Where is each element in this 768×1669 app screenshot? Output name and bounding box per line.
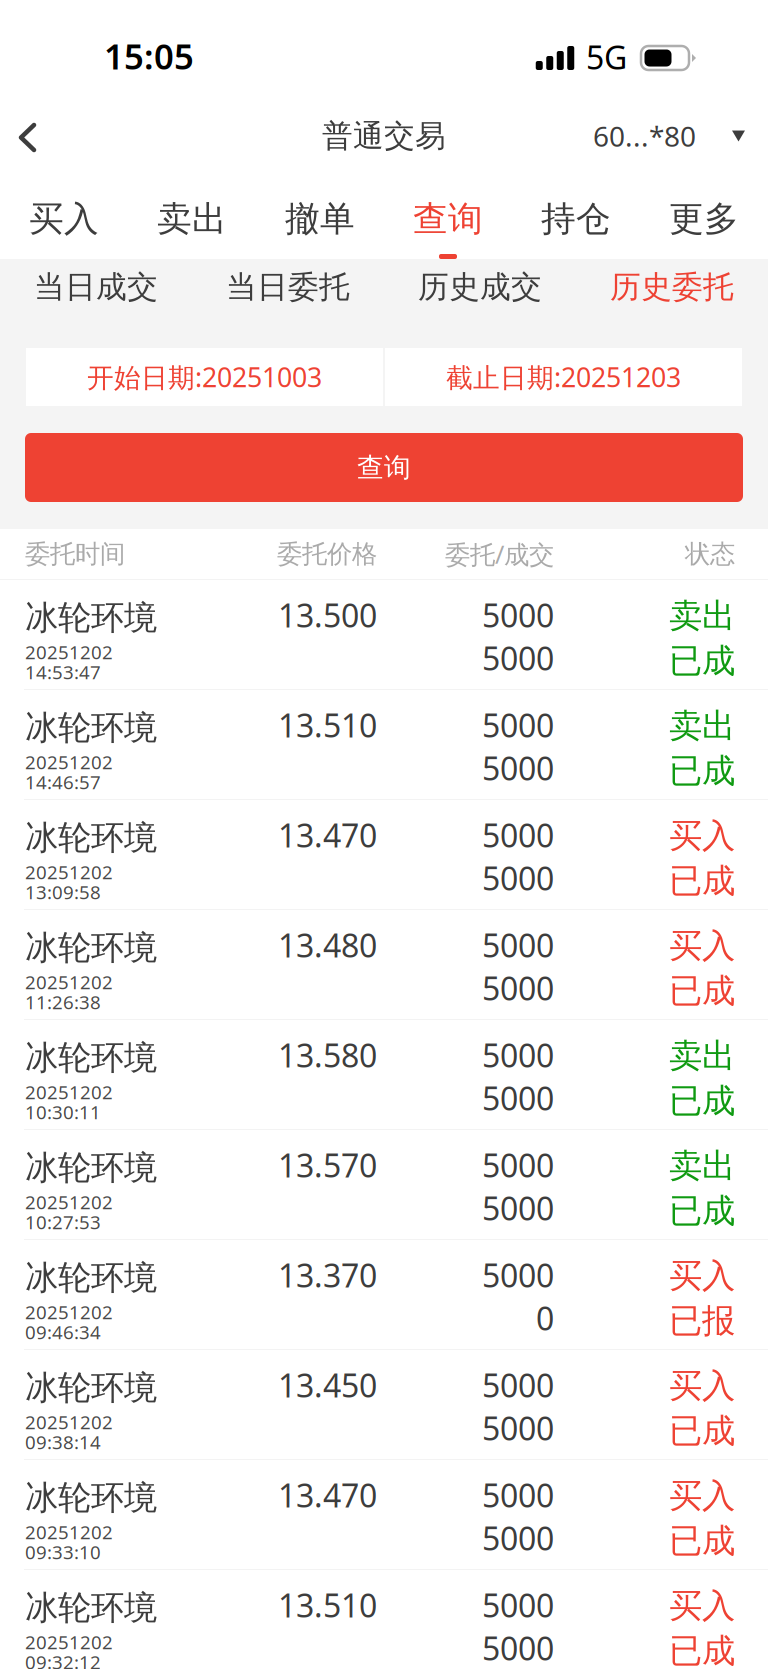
staticText: 委托/成交	[445, 537, 554, 571]
staticText: 历史成交	[418, 268, 542, 306]
staticText: 撤单	[285, 198, 355, 240]
staticText: 5000	[482, 814, 554, 856]
button[interactable]: 卖出	[128, 178, 256, 259]
staticText: 13.510	[278, 704, 377, 746]
button[interactable]: 历史委托	[576, 259, 768, 311]
staticText: 冰轮环境	[25, 1257, 157, 1298]
staticText: 5000	[482, 637, 554, 679]
button[interactable]: 冰轮环境	[0, 580, 768, 690]
staticText: 冰轮环境	[25, 1587, 157, 1628]
staticText: 已成	[669, 1410, 735, 1451]
button[interactable]: 持仓	[512, 178, 640, 259]
staticText: 查询	[357, 451, 411, 484]
button[interactable]: 买入	[0, 178, 128, 259]
staticText: 20251202	[25, 1190, 113, 1214]
staticText: 卖出	[669, 595, 735, 636]
staticText: 委托价格	[277, 538, 377, 569]
staticText: 15:05	[104, 33, 194, 79]
staticText: 20251202	[25, 1410, 113, 1434]
staticText: 当日委托	[226, 268, 350, 306]
staticText: 买入	[669, 1255, 735, 1296]
staticText: 买入	[29, 198, 99, 240]
staticText: 卖出	[669, 1145, 735, 1186]
staticText: 买入	[669, 925, 735, 966]
staticText: 买入	[669, 1585, 735, 1626]
button[interactable]: 冰轮环境	[0, 1460, 768, 1570]
staticText: 09:32:12	[25, 1650, 101, 1669]
staticText: 5000	[482, 1034, 554, 1076]
button[interactable]: 当日委托	[192, 259, 384, 311]
staticText: 更多	[669, 198, 739, 240]
staticText: 14:53:47	[25, 660, 101, 684]
button[interactable]: 更多	[640, 178, 768, 259]
staticText: 11:26:38	[25, 990, 101, 1014]
button[interactable]: 冰轮环境	[0, 910, 768, 1020]
staticText: 卖出	[669, 705, 735, 746]
button[interactable]: 60...*80	[593, 96, 745, 178]
button[interactable]: 当日成交	[0, 259, 192, 311]
staticText: 冰轮环境	[25, 927, 157, 968]
staticText: 5000	[482, 1407, 554, 1449]
staticText: 5000	[482, 1517, 554, 1559]
staticText: 冰轮环境	[25, 707, 157, 748]
staticText: 冰轮环境	[25, 1147, 157, 1188]
staticText: 14:46:57	[25, 770, 101, 794]
button[interactable]: 冰轮环境	[0, 1020, 768, 1130]
button[interactable]: 返回	[0, 96, 55, 178]
button[interactable]: 冰轮环境	[0, 690, 768, 800]
staticText: 20251202	[25, 1630, 113, 1654]
staticText: 5000	[482, 1254, 554, 1296]
staticText: 60...*80	[593, 117, 696, 155]
staticText: 20251202	[25, 750, 113, 774]
staticText: 买入	[669, 1475, 735, 1516]
staticText: 5000	[482, 1627, 554, 1669]
staticText: 13.470	[278, 814, 377, 856]
button[interactable]: 冰轮环境	[0, 1570, 768, 1669]
staticText: 13.370	[278, 1254, 377, 1296]
staticText: 冰轮环境	[25, 1037, 157, 1078]
staticText: 10:30:11	[25, 1100, 101, 1124]
staticText: 20251202	[25, 1300, 113, 1324]
staticText: 13.470	[278, 1474, 377, 1516]
button[interactable]: 冰轮环境	[0, 800, 768, 910]
staticText: 13:09:58	[25, 880, 101, 904]
staticText: 5000	[482, 704, 554, 746]
staticText: 5000	[482, 1187, 554, 1229]
staticText: 20251202	[25, 970, 113, 994]
staticText: 5G	[586, 36, 627, 78]
button[interactable]: 冰轮环境	[0, 1240, 768, 1350]
button[interactable]: 冰轮环境	[0, 1130, 768, 1240]
staticText: 已成	[669, 1080, 735, 1121]
staticText: 已成	[669, 1630, 735, 1669]
staticText: 委托时间	[25, 538, 125, 569]
staticText: 5000	[482, 747, 554, 789]
staticText: 冰轮环境	[25, 597, 157, 638]
staticText: 状态	[685, 538, 735, 569]
staticText: 20251202	[25, 640, 113, 664]
button[interactable]: 截止日期:20251203	[385, 348, 742, 406]
staticText: 5000	[482, 857, 554, 899]
button[interactable]: 查询	[384, 178, 512, 259]
staticText: 13.580	[278, 1034, 377, 1076]
staticText: 普通交易	[322, 117, 446, 155]
staticText: 已成	[669, 1190, 735, 1231]
staticText: 5000	[482, 1584, 554, 1626]
staticText: 已成	[669, 970, 735, 1011]
staticText: 冰轮环境	[25, 817, 157, 858]
button[interactable]: 开始日期:20251003	[26, 348, 383, 406]
staticText: 5000	[482, 1364, 554, 1406]
staticText: 09:38:14	[25, 1430, 101, 1454]
staticText: 5000	[482, 594, 554, 636]
button[interactable]: 撤单	[256, 178, 384, 259]
button[interactable]: 冰轮环境	[0, 1350, 768, 1460]
staticText: 卖出	[157, 198, 227, 240]
staticText: 已成	[669, 1520, 735, 1561]
button[interactable]: 查询	[25, 433, 743, 502]
staticText: 买入	[669, 1365, 735, 1406]
staticText: 已成	[669, 640, 735, 681]
staticText: 0	[536, 1297, 554, 1339]
staticText: 5000	[482, 1474, 554, 1516]
button[interactable]: 历史成交	[384, 259, 576, 311]
staticText: 查询	[413, 198, 483, 240]
staticText: 20251202	[25, 1080, 113, 1104]
